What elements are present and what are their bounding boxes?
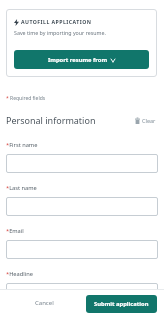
staticText: Personal information	[6, 114, 96, 126]
staticText: *Headline	[6, 270, 33, 278]
staticText: Save time by importing your resume.	[14, 29, 106, 36]
staticText: Import resume from	[48, 56, 108, 64]
staticText: Cancel	[35, 299, 54, 307]
button[interactable]: Import resume from	[14, 50, 149, 69]
button[interactable]: Cancel	[26, 295, 62, 311]
staticText: *Email	[6, 227, 24, 235]
button[interactable]	[6, 283, 158, 302]
staticText: *First name	[6, 141, 38, 149]
button[interactable]: Submit application	[86, 295, 157, 313]
staticText: Submit application	[94, 300, 149, 308]
button[interactable]: Clear	[135, 117, 156, 124]
button[interactable]	[6, 240, 158, 259]
staticText: *Last name	[6, 184, 37, 192]
button[interactable]	[6, 154, 158, 173]
staticText: Clear	[142, 117, 156, 124]
button[interactable]	[6, 197, 158, 216]
staticText: AUTOFILL APPLICATION	[21, 18, 92, 25]
staticText: * Required fields	[6, 95, 46, 102]
